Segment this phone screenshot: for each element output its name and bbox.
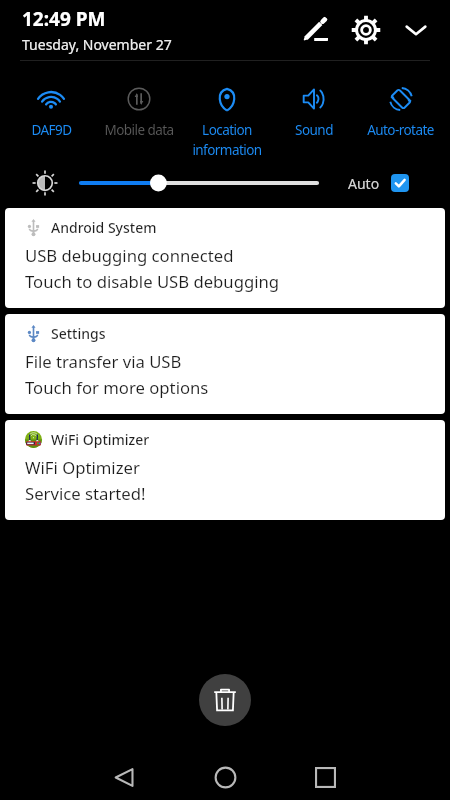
staticText: Touch to disable USB debugging — [25, 270, 280, 293]
button[interactable]: Mobile data — [95, 61, 183, 139]
button[interactable]: Sound — [270, 61, 357, 139]
staticText: Sound — [295, 121, 333, 139]
button[interactable]: Edit — [300, 14, 332, 46]
staticText: WiFi Optimizer — [25, 456, 140, 479]
staticText: USB debugging connected — [25, 244, 234, 267]
staticText: WiFi Optimizer — [51, 430, 150, 449]
staticText: Android System — [51, 218, 157, 237]
staticText: Service started! — [25, 482, 146, 505]
button[interactable]: Auto brightness — [391, 174, 409, 192]
button[interactable]: Location information — [183, 61, 270, 159]
button[interactable]: Settings — [5, 314, 445, 414]
staticText: Settings — [51, 324, 106, 343]
button[interactable]: DAF9D — [7, 61, 95, 139]
staticText: Touch for more options — [25, 376, 209, 399]
staticText: Location information — [192, 121, 262, 159]
button[interactable]: Auto-rotate — [357, 61, 444, 139]
staticText: Mobile data — [104, 121, 174, 139]
staticText: 12:49 PM — [22, 6, 106, 32]
button[interactable]: Back — [104, 757, 145, 798]
button[interactable]: Recents — [305, 757, 346, 798]
staticText: Tuesday, November 27 — [22, 35, 172, 54]
staticText: Auto-rotate — [367, 121, 434, 139]
button[interactable]: Home — [205, 757, 246, 798]
staticText: File transfer via USB — [25, 350, 182, 373]
button[interactable]: Clear all notifications — [199, 674, 251, 726]
button[interactable]: Collapse — [400, 14, 432, 46]
button[interactable]: WiFi Optimizer — [5, 420, 445, 520]
button[interactable]: Android System — [5, 208, 445, 308]
button[interactable]: Settings — [350, 14, 382, 46]
staticText: Auto — [348, 174, 380, 193]
staticText: DAF9D — [31, 121, 72, 139]
